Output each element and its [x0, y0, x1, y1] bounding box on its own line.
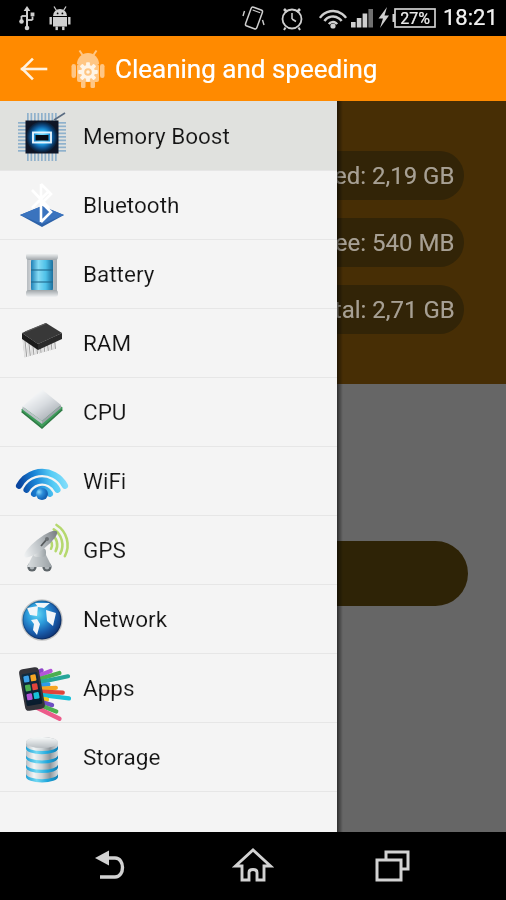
button[interactable]: Clean: [40, 541, 468, 606]
button[interactable]: Storage: [0, 723, 337, 791]
button[interactable]: Home: [211, 832, 295, 900]
staticText: Cleaning and speeding: [115, 54, 378, 84]
button[interactable]: Free: 540 MB: [57, 218, 464, 267]
staticText: Free: 540 MB: [314, 229, 455, 257]
button[interactable]: Recents: [351, 832, 435, 900]
button[interactable]: CPU: [0, 378, 337, 446]
staticText: Bluetooth: [83, 192, 180, 218]
staticText: GPS: [83, 537, 126, 563]
button[interactable]: WiFi: [0, 447, 337, 515]
staticText: Total: 2,71 GB: [307, 296, 455, 324]
button[interactable]: Used: 2,19 GB: [57, 151, 464, 200]
button[interactable]: RAM: [0, 309, 337, 377]
button[interactable]: Back: [71, 832, 155, 900]
staticText: Storage: [83, 744, 161, 770]
staticText: Battery: [83, 261, 155, 287]
button[interactable]: Battery: [0, 240, 337, 308]
staticText: Network: [83, 606, 168, 632]
staticText: 18:21: [443, 5, 498, 31]
staticText: Used: 2,19 GB: [306, 162, 455, 190]
staticText: Memory Boost: [83, 123, 230, 149]
button[interactable]: Network: [0, 585, 337, 653]
button[interactable]: Total: 2,71 GB: [57, 285, 464, 334]
staticText: 27%: [396, 9, 434, 28]
button[interactable]: Back: [12, 47, 56, 91]
staticText: Apps: [83, 675, 135, 701]
staticText: RAM: [83, 330, 132, 356]
staticText: WiFi: [83, 468, 127, 494]
button[interactable]: Apps: [0, 654, 337, 722]
button[interactable]: GPS: [0, 516, 337, 584]
button[interactable]: Memory Boost: [0, 102, 337, 170]
staticText: CPU: [83, 399, 127, 425]
button[interactable]: Bluetooth: [0, 171, 337, 239]
